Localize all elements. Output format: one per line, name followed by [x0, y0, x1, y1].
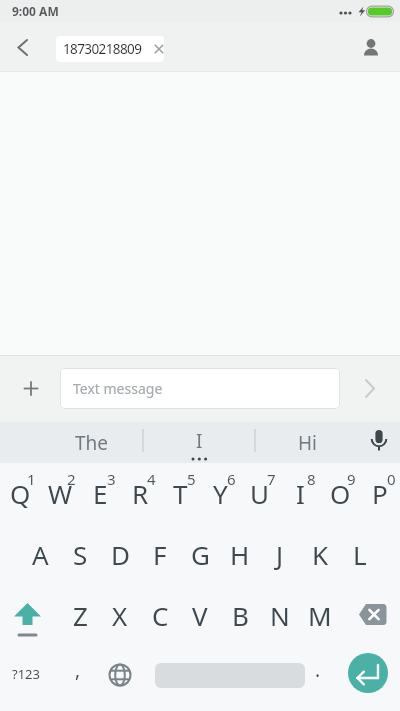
button[interactable]: F — [140, 524, 180, 585]
staticText: 8 — [307, 469, 316, 489]
button[interactable] — [0, 355, 56, 422]
staticText: 2 — [67, 469, 76, 489]
staticText: Y — [213, 476, 228, 511]
staticText: , — [75, 657, 81, 683]
button[interactable]: 5 — [160, 463, 200, 524]
staticText: 9 — [347, 469, 356, 489]
staticText: S — [73, 537, 88, 572]
staticText: . — [315, 657, 321, 683]
button[interactable]: X — [100, 585, 140, 646]
staticText: E — [93, 476, 108, 511]
button[interactable]: 9 — [320, 463, 360, 524]
button[interactable]: J — [260, 524, 300, 585]
staticText: 9:00 AM — [12, 3, 59, 19]
staticText: 4 — [147, 469, 156, 489]
staticText: K — [312, 537, 329, 572]
staticText: U — [250, 476, 270, 511]
staticText: I — [296, 476, 305, 511]
staticText: The — [75, 430, 109, 456]
staticText: G — [191, 537, 210, 572]
staticText: R — [132, 476, 149, 511]
button[interactable]: M — [300, 585, 340, 646]
button[interactable]: The — [0, 422, 143, 463]
staticText: V — [192, 598, 208, 633]
staticText: Q — [10, 476, 31, 511]
button[interactable]: 3 — [80, 463, 120, 524]
button[interactable] — [0, 585, 60, 646]
button[interactable]: 8 — [280, 463, 320, 524]
button[interactable] — [98, 646, 144, 702]
staticText: 7 — [267, 469, 276, 489]
button[interactable]: I — [143, 422, 255, 463]
staticText: 0 — [387, 469, 396, 489]
staticText: H — [230, 537, 250, 572]
button[interactable]: . — [295, 646, 340, 702]
button[interactable]: Hi — [255, 422, 360, 463]
staticText: X — [112, 598, 128, 633]
staticText: A — [32, 537, 49, 572]
staticText: 5 — [187, 469, 196, 489]
button[interactable]: 18730218809 — [56, 36, 164, 62]
staticText: P — [372, 476, 388, 511]
staticText: I — [196, 428, 203, 454]
button[interactable] — [348, 653, 388, 693]
staticText: T — [173, 476, 188, 511]
staticText: N — [270, 598, 290, 633]
staticText: Text message — [73, 379, 163, 398]
staticText: 1 — [27, 469, 36, 489]
button[interactable]: D — [100, 524, 140, 585]
button[interactable]: G — [180, 524, 220, 585]
button[interactable]: L — [340, 524, 380, 585]
button[interactable]: K — [300, 524, 340, 585]
staticText: 6 — [227, 469, 236, 489]
staticText: F — [153, 537, 167, 572]
button[interactable] — [356, 355, 400, 422]
button[interactable] — [356, 422, 400, 463]
button[interactable]: 6 — [200, 463, 240, 524]
button[interactable] — [352, 22, 400, 72]
button[interactable]: 7 — [240, 463, 280, 524]
button[interactable]: V — [180, 585, 220, 646]
button[interactable]: A — [20, 524, 60, 585]
staticText: 18730218809 — [63, 40, 142, 58]
staticText: C — [152, 598, 169, 633]
staticText: 3 — [107, 469, 116, 489]
button[interactable]: Text message — [60, 368, 340, 409]
staticText: D — [111, 537, 130, 572]
button[interactable]: , — [52, 646, 104, 702]
button[interactable] — [340, 585, 400, 646]
button[interactable]: H — [220, 524, 260, 585]
staticText: W — [48, 476, 73, 511]
staticText: Z — [73, 598, 88, 633]
button[interactable]: 1 — [0, 463, 40, 524]
button[interactable]: ?123 — [0, 646, 52, 702]
button[interactable]: 2 — [40, 463, 80, 524]
button[interactable] — [0, 22, 44, 72]
button[interactable]: S — [60, 524, 100, 585]
staticText: Hi — [298, 430, 317, 456]
staticText: ?123 — [12, 665, 40, 683]
staticText: L — [353, 537, 367, 572]
staticText: J — [276, 537, 284, 572]
button[interactable]: N — [260, 585, 300, 646]
staticText: B — [232, 598, 249, 633]
staticText: O — [330, 476, 351, 511]
staticText: M — [308, 598, 332, 633]
button[interactable]: 4 — [120, 463, 160, 524]
button[interactable]: B — [220, 585, 260, 646]
button[interactable]: 0 — [360, 463, 400, 524]
button[interactable]: C — [140, 585, 180, 646]
button[interactable]: Z — [60, 585, 100, 646]
